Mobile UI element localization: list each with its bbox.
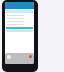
button[interactable]: Record bbox=[29, 55, 32, 58]
button[interactable] bbox=[5, 2, 34, 9]
button[interactable]: Shutter bbox=[7, 55, 11, 59]
